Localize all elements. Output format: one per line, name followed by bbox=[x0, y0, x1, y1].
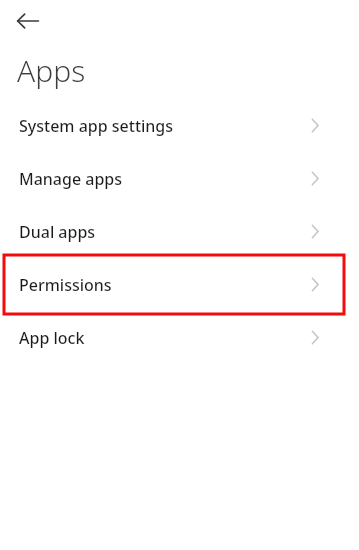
button[interactable]: Permissions bbox=[0, 258, 359, 311]
button[interactable]: App lock bbox=[0, 311, 359, 364]
button[interactable]: System app settings bbox=[0, 99, 359, 152]
staticText: App lock bbox=[19, 327, 85, 349]
button[interactable]: Manage apps bbox=[0, 152, 359, 205]
staticText: System app settings bbox=[19, 115, 174, 137]
staticText: Dual apps bbox=[19, 221, 96, 243]
staticText: Apps bbox=[17, 50, 86, 91]
button[interactable]: Back bbox=[15, 6, 45, 36]
staticText: Permissions bbox=[19, 274, 112, 296]
staticText: Manage apps bbox=[19, 168, 123, 190]
button[interactable]: Dual apps bbox=[0, 205, 359, 258]
